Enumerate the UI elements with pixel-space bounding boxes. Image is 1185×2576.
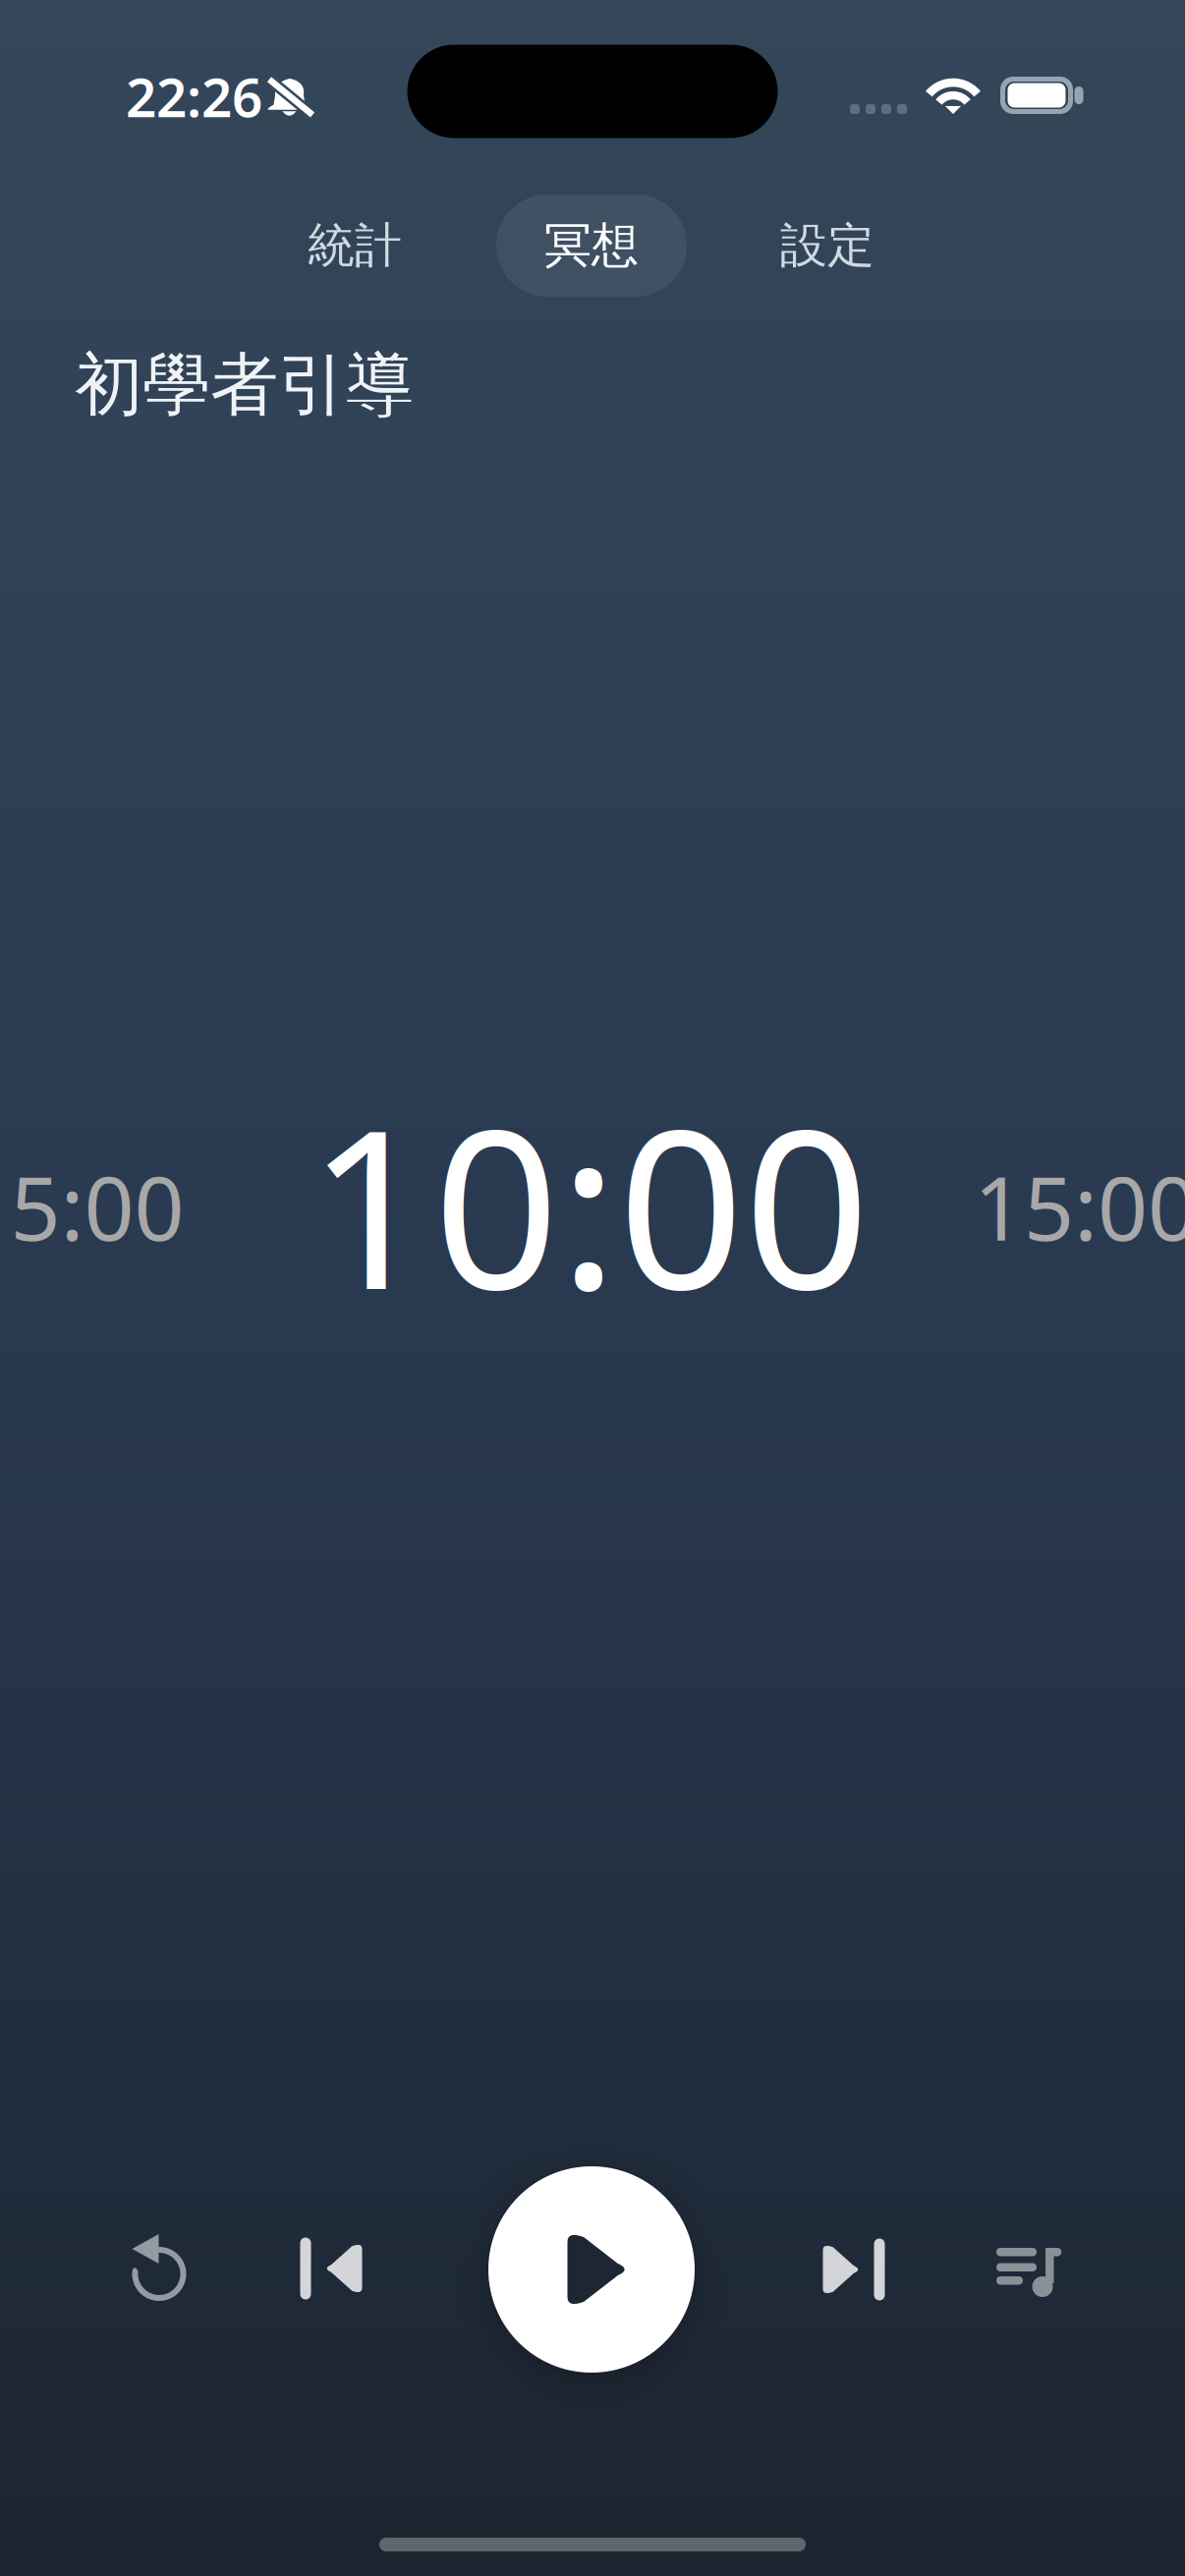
button[interactable]: Play bbox=[488, 2166, 695, 2373]
staticText: 15:00 bbox=[974, 1148, 1185, 1265]
button[interactable]: 設定 bbox=[732, 195, 923, 297]
staticText: 冥想 bbox=[544, 217, 639, 275]
button[interactable]: Restart bbox=[85, 2194, 233, 2341]
button[interactable]: 統計 bbox=[259, 195, 450, 297]
button[interactable]: Previous bbox=[257, 2195, 405, 2342]
staticText: 設定 bbox=[780, 217, 875, 275]
button[interactable]: 冥想 bbox=[496, 195, 687, 297]
staticText: 10:00 bbox=[308, 1057, 870, 1350]
button[interactable]: Next bbox=[780, 2196, 928, 2343]
button[interactable]: Playlist bbox=[955, 2199, 1102, 2346]
staticText: 22:26 bbox=[126, 61, 262, 132]
staticText: 初學者引導 bbox=[75, 343, 414, 427]
staticText: 5:00 bbox=[10, 1148, 184, 1265]
staticText: 統計 bbox=[308, 217, 402, 275]
